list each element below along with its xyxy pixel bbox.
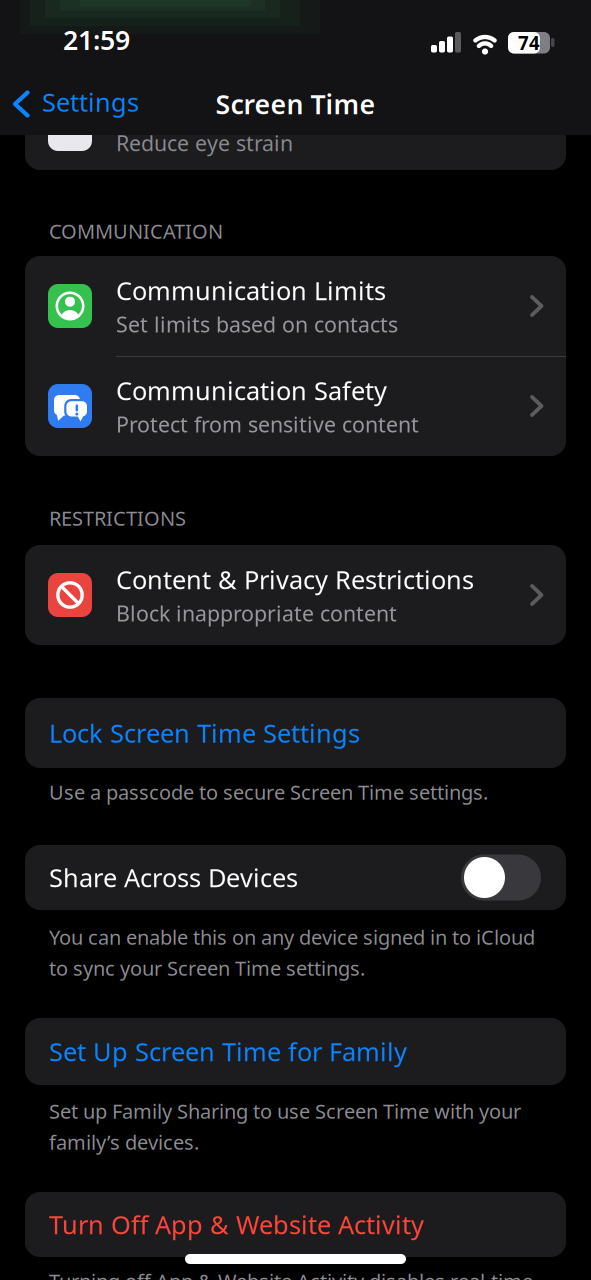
staticText: Use a passcode to secure Screen Time set…: [49, 779, 488, 805]
staticText: You can enable this on any device signed…: [49, 924, 535, 950]
staticText: Reduce eye strain: [116, 129, 293, 157]
staticText: Turn Off App & Website Activity: [49, 1208, 424, 1241]
staticText: 74: [518, 30, 540, 55]
button[interactable]: Screen Distance: [25, 100, 566, 170]
button[interactable]: Content & Privacy Restrictions: [25, 545, 566, 645]
staticText: Communication Limits: [116, 273, 386, 307]
button[interactable]: Lock Screen Time Settings: [25, 698, 566, 768]
staticText: Screen Time: [215, 86, 375, 122]
staticText: Protect from sensitive content: [116, 410, 419, 438]
button[interactable]: Communication Safety: [25, 356, 566, 456]
staticText: Content & Privacy Restrictions: [116, 562, 474, 596]
button[interactable]: Set Up Screen Time for Family: [25, 1018, 566, 1085]
staticText: Block inappropriate content: [116, 599, 397, 627]
staticText: COMMUNICATION: [49, 218, 223, 244]
staticText: Set Up Screen Time for Family: [49, 1035, 407, 1068]
staticText: family’s devices.: [49, 1129, 199, 1155]
button[interactable]: Communication Limits: [25, 256, 566, 356]
staticText: RESTRICTIONS: [49, 505, 186, 531]
staticText: Communication Safety: [116, 373, 387, 407]
staticText: Settings: [42, 85, 139, 119]
staticText: Lock Screen Time Settings: [49, 716, 360, 750]
staticText: Set limits based on contacts: [116, 310, 398, 338]
button[interactable]: Share Across Devices: [461, 854, 541, 900]
staticText: Share Across Devices: [49, 861, 298, 894]
staticText: Turning off App & Website Activity disab…: [49, 1268, 533, 1280]
staticText: Set up Family Sharing to use Screen Time…: [49, 1098, 521, 1124]
button[interactable]: Back to Settings: [0, 85, 139, 123]
staticText: to sync your Screen Time settings.: [49, 955, 365, 981]
button[interactable]: Turn Off App & Website Activity: [25, 1192, 566, 1257]
staticText: 21:59: [63, 22, 130, 57]
